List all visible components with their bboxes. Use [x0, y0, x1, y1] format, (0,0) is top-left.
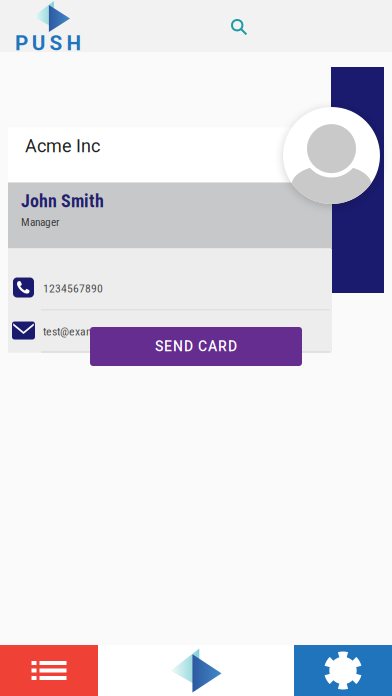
button[interactable]: SEND CARD — [90, 327, 302, 366]
button[interactable]: Settings — [294, 645, 392, 696]
button[interactable]: 1234567890 — [8, 266, 332, 310]
staticText: Manager — [21, 215, 59, 229]
staticText: 1234567890 — [43, 281, 103, 295]
staticText: Acme Inc — [25, 135, 100, 157]
button[interactable]: test@example.com — [8, 310, 332, 352]
staticText: test@example.com — [43, 324, 133, 338]
button[interactable]: Search — [218, 6, 262, 50]
button[interactable]: List — [0, 645, 98, 696]
staticText: John Smith — [21, 190, 104, 212]
staticText: SEND CARD — [155, 338, 237, 355]
staticText: PUSH — [15, 31, 81, 55]
button[interactable]: Home — [98, 645, 294, 696]
